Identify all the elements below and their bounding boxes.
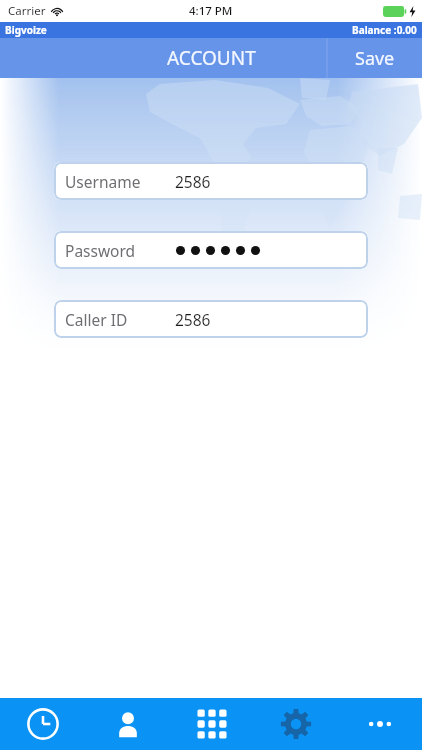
staticText: ACCOUNT	[167, 45, 256, 71]
button[interactable]: Save	[327, 38, 422, 78]
button[interactable]: Caller ID	[54, 300, 368, 338]
staticText: Caller ID	[65, 309, 128, 330]
staticText: Username	[65, 171, 141, 192]
button[interactable]: Password	[54, 231, 368, 269]
staticText: Balance :0.00	[352, 23, 417, 37]
button[interactable]: Keypad	[170, 698, 254, 750]
staticText: 4:17 PM	[189, 3, 233, 19]
staticText: Bigvoize	[5, 23, 47, 37]
staticText: 2586	[175, 171, 211, 192]
staticText: Carrier	[8, 3, 46, 19]
staticText: Password	[65, 240, 136, 261]
button[interactable]: Recent calls	[0, 698, 85, 750]
staticText: 2586	[175, 309, 211, 330]
button[interactable]: Username	[54, 162, 368, 200]
button[interactable]: Settings	[254, 698, 338, 750]
button[interactable]: More	[338, 698, 422, 750]
button[interactable]: Contacts	[85, 698, 170, 750]
staticText: Save	[355, 46, 395, 71]
